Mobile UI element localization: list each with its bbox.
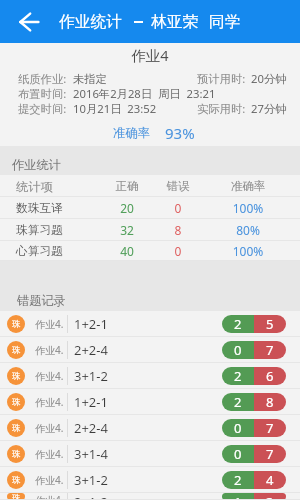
staticText: 0 xyxy=(148,200,208,216)
staticText: 珠算习题 xyxy=(16,223,63,238)
button[interactable]: Back xyxy=(0,0,52,43)
staticText: 3 xyxy=(266,493,274,500)
staticText: 1 xyxy=(234,493,242,500)
staticText: 错误 xyxy=(148,179,208,193)
staticText: 2 xyxy=(234,471,242,489)
staticText: 珠 xyxy=(12,449,21,460)
button[interactable]: 心算习题 xyxy=(0,241,300,261)
staticText: 准确率 xyxy=(218,179,278,193)
staticText: 作业4. xyxy=(35,421,64,435)
staticText: 作业4. xyxy=(35,447,64,461)
button[interactable]: 珠 xyxy=(0,389,300,415)
staticText: 3+1-2 xyxy=(74,471,108,489)
staticText: 3+1-4 xyxy=(74,445,108,463)
staticText: 准确率 xyxy=(113,125,150,140)
staticText: 10月21日 23:52 xyxy=(73,101,157,116)
staticText: 2+2-4 xyxy=(74,419,108,437)
staticText: 2+2-4 xyxy=(74,341,108,359)
staticText: 20分钟 xyxy=(251,71,287,86)
staticText: 珠 xyxy=(12,475,21,486)
button[interactable]: 珠 xyxy=(0,441,300,467)
staticText: 4 xyxy=(266,471,274,489)
staticText: 珠 xyxy=(12,345,21,356)
button[interactable]: 珠 xyxy=(0,467,300,493)
button[interactable]: 珠 xyxy=(0,337,300,363)
button[interactable]: 珠 xyxy=(0,415,300,441)
staticText: 7 xyxy=(266,419,274,437)
staticText: 2+1-2 xyxy=(74,493,108,500)
staticText: 2016年2月28日 周日 23:21 xyxy=(73,86,216,101)
staticText: 未指定 xyxy=(73,72,107,86)
staticText: 7 xyxy=(266,341,274,359)
staticText: 100% xyxy=(218,243,278,259)
staticText: 100% xyxy=(218,200,278,216)
staticText: 2 xyxy=(234,367,242,385)
staticText: 1+2-1 xyxy=(74,393,108,411)
staticText: 2 xyxy=(234,315,242,333)
staticText: 6 xyxy=(266,367,274,385)
staticText: 布置时间: xyxy=(18,86,67,101)
staticText: 珠 xyxy=(12,397,21,408)
staticText: 20 xyxy=(97,200,157,216)
staticText: 1+2-1 xyxy=(74,315,108,333)
staticText: 93% xyxy=(165,123,195,143)
button[interactable]: 珠 xyxy=(0,363,300,389)
staticText: 0 xyxy=(234,445,242,463)
staticText: 32 xyxy=(97,222,157,238)
staticText: 正确 xyxy=(97,179,157,193)
staticText: 珠 xyxy=(12,371,21,382)
staticText: 8 xyxy=(148,222,208,238)
staticText: 作业4. xyxy=(35,395,64,409)
staticText: 作业4 xyxy=(0,45,300,65)
staticText: 纸质作业: xyxy=(18,71,67,86)
staticText: 作业4. xyxy=(35,473,64,487)
staticText: 5 xyxy=(266,315,274,333)
staticText: 80% xyxy=(218,222,278,238)
staticText: 7 xyxy=(266,445,274,463)
staticText: 0 xyxy=(234,341,242,359)
staticText: 珠 xyxy=(12,319,21,330)
staticText: 实际用时: xyxy=(197,101,246,116)
staticText: 珠 xyxy=(12,493,21,500)
button[interactable]: 珠 xyxy=(0,493,300,500)
staticText: 心算习题 xyxy=(16,244,63,259)
staticText: 0 xyxy=(234,419,242,437)
staticText: 0 xyxy=(148,243,208,259)
staticText: 作业统计 xyxy=(12,157,61,172)
staticText: 错题记录 xyxy=(17,293,66,308)
staticText: 作业4. xyxy=(35,343,64,357)
staticText: 8 xyxy=(266,393,274,411)
staticText: 作业统计 xyxy=(59,12,122,32)
button[interactable]: 珠算习题 xyxy=(0,219,300,241)
staticText: 2 xyxy=(234,393,242,411)
staticText: 40 xyxy=(97,243,157,259)
staticText: 同学 xyxy=(209,12,241,32)
staticText: 数珠互译 xyxy=(16,201,63,216)
staticText: 作业4. xyxy=(35,369,64,383)
staticText: 统计项 xyxy=(16,179,53,194)
staticText: 林亚荣 xyxy=(151,12,199,32)
staticText: 作业4. xyxy=(35,317,64,331)
staticText: 提交时间: xyxy=(18,101,67,116)
staticText: 珠 xyxy=(12,423,21,434)
staticText: 作业4. xyxy=(35,493,64,500)
staticText: 预计用时: xyxy=(197,71,246,86)
button[interactable]: 统计项 xyxy=(0,175,300,197)
staticText: 27分钟 xyxy=(251,101,287,116)
button[interactable]: 珠 xyxy=(0,311,300,337)
staticText: 3+1-2 xyxy=(74,367,108,385)
button[interactable]: 数珠互译 xyxy=(0,197,300,219)
